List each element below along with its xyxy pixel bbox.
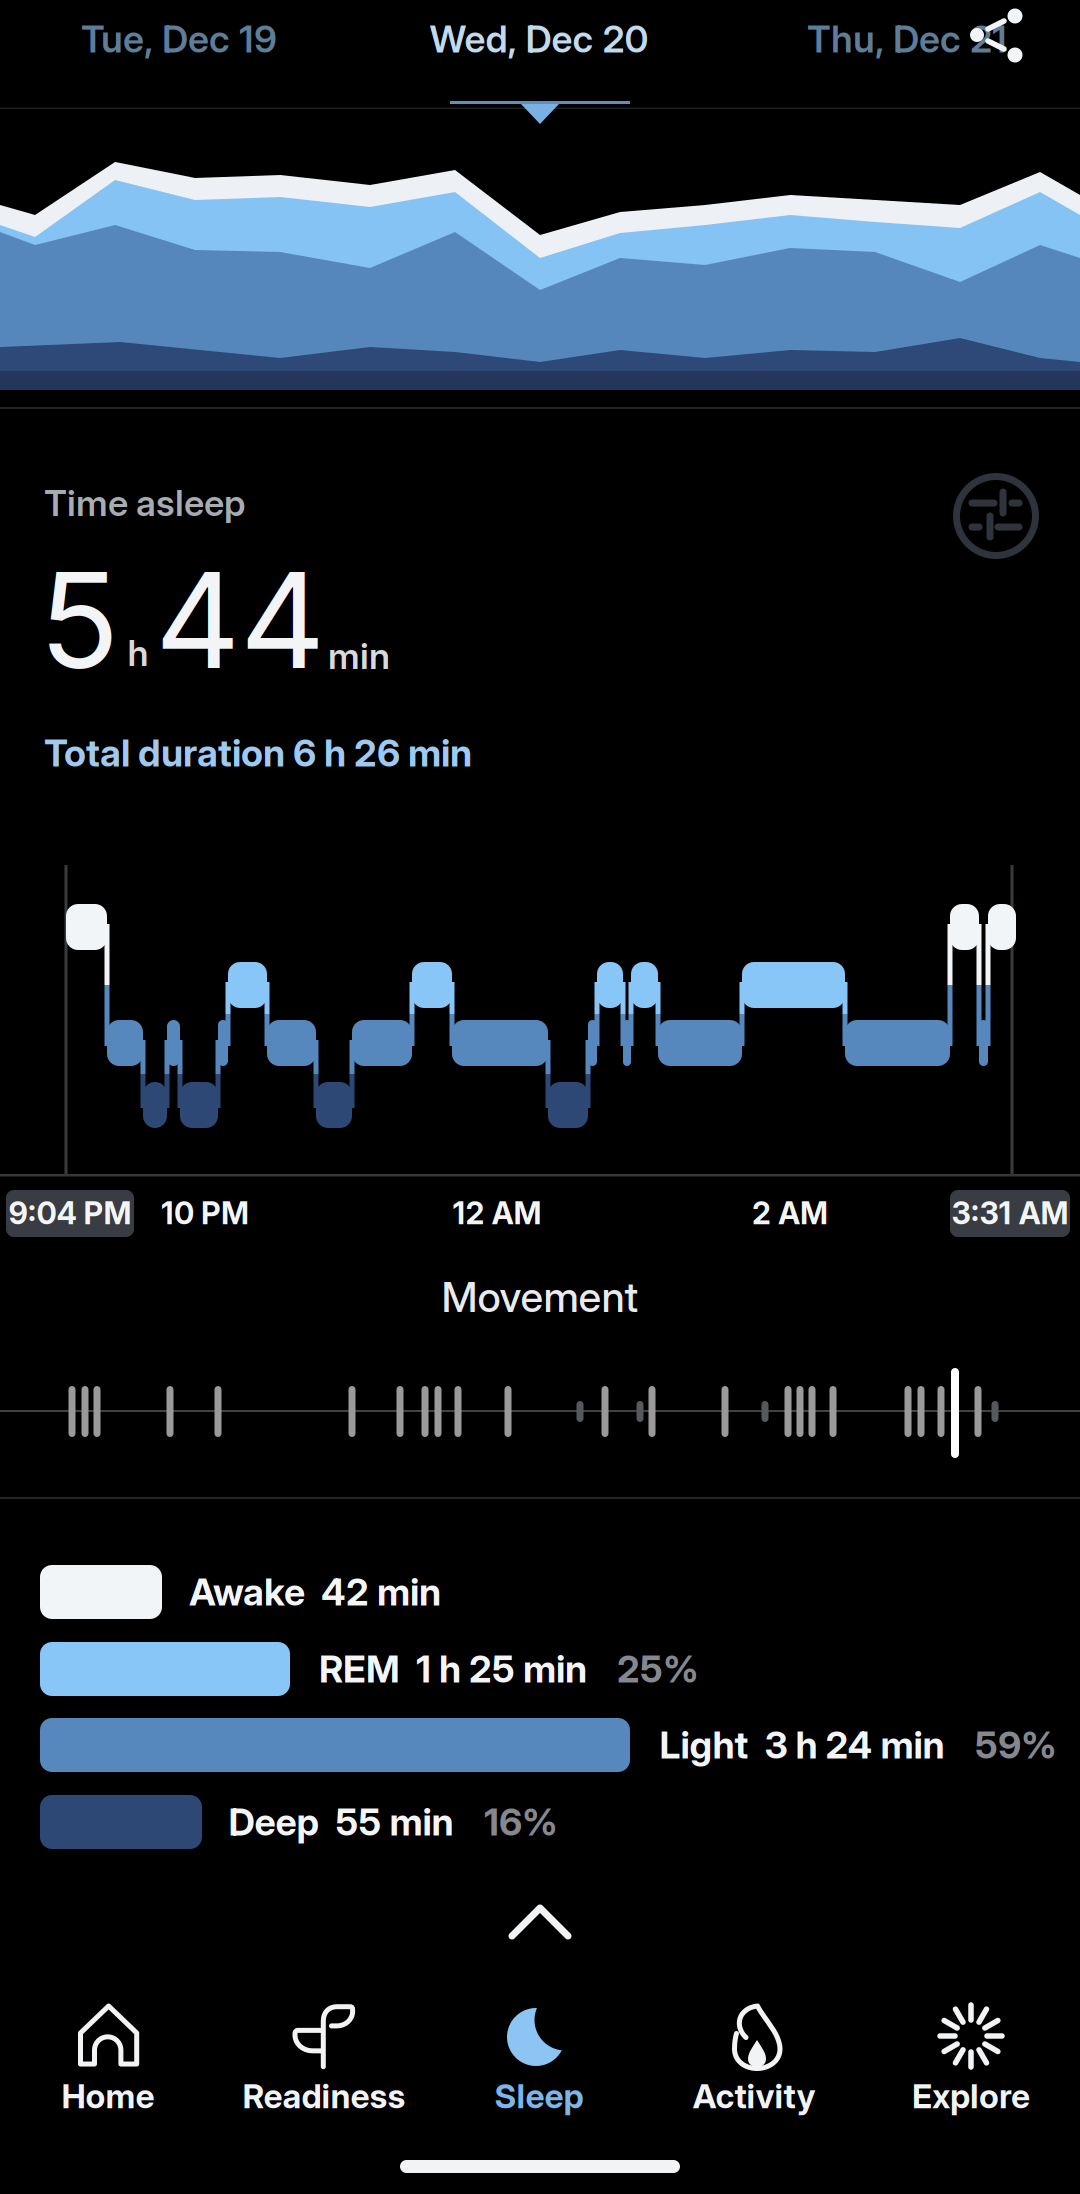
staticText: Home [61, 2076, 154, 2116]
staticText: 5 [39, 542, 119, 698]
staticText: Thu, Dec 21 [807, 17, 1007, 61]
button[interactable]: Wed, Dec 20 [429, 17, 648, 61]
staticText: Sleep [494, 2076, 583, 2116]
staticText: 44 [155, 542, 325, 698]
staticText: Activity [692, 2076, 815, 2116]
staticText: h [127, 632, 148, 674]
staticText: Wed, Dec 20 [429, 17, 648, 61]
button[interactable]: Home [0, 1975, 216, 2125]
staticText: Light 3 h 24 min [659, 1723, 944, 1767]
staticText: 10 PM [161, 1195, 249, 1231]
staticText: Explore [912, 2076, 1030, 2116]
button[interactable] [480, 1895, 600, 1949]
button[interactable]: Activity [648, 1975, 864, 2125]
staticText: Movement [441, 1273, 638, 1321]
staticText: Deep 55 min [228, 1800, 453, 1844]
staticText: Awake 42 min [189, 1570, 441, 1614]
staticText: 59% [975, 1723, 1057, 1767]
staticText: 25% [617, 1647, 699, 1691]
staticText: min [328, 635, 390, 677]
button[interactable]: Readiness [216, 1975, 432, 2125]
staticText: 16% [484, 1800, 558, 1844]
staticText: Readiness [242, 2076, 405, 2116]
staticText: Total duration 6 h 26 min [44, 731, 472, 775]
staticText: 12 AM [452, 1195, 541, 1231]
button[interactable]: Tue, Dec 19 [81, 17, 277, 61]
button[interactable] [955, 0, 1045, 72]
staticText: 9:04 PM [8, 1195, 131, 1231]
button[interactable]: Explore [864, 1975, 1080, 2125]
staticText: 2 AM [752, 1195, 828, 1231]
staticText: 3:31 AM [951, 1195, 1068, 1231]
button[interactable]: Sleep [432, 1975, 648, 2125]
button[interactable]: Thu, Dec 21 [807, 17, 1007, 61]
staticText: REM 1 h 25 min [319, 1647, 587, 1691]
button[interactable] [946, 466, 1046, 566]
staticText: Time asleep [44, 482, 245, 524]
staticText: Tue, Dec 19 [81, 17, 277, 61]
